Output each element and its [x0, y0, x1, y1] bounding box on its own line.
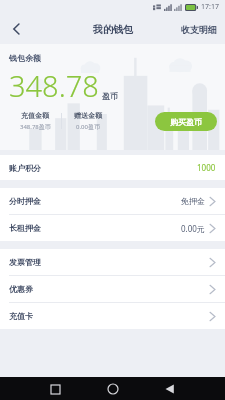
staticText: 348.78	[9, 66, 99, 105]
staticText: 账户积分	[9, 163, 41, 173]
staticText: 1000	[197, 162, 216, 173]
button[interactable]: 收支明细	[181, 24, 217, 35]
staticText: 优惠券	[9, 284, 33, 294]
staticText: 盈币	[102, 91, 118, 101]
button[interactable]: 长租押金	[0, 215, 225, 241]
staticText: 348.78盈币	[20, 123, 51, 131]
staticText: 赠送金额	[74, 111, 102, 120]
button[interactable]: Back	[159, 378, 181, 400]
staticText: 分时押金	[9, 196, 41, 206]
button[interactable]: 分时押金	[0, 188, 225, 215]
staticText: 我的钱包	[93, 23, 133, 36]
staticText: 发票管理	[9, 257, 41, 267]
staticText: 0.00元	[181, 223, 205, 234]
button[interactable]: 账户积分	[0, 155, 225, 180]
staticText: 长租押金	[9, 223, 41, 233]
staticText: 17:17	[201, 2, 219, 12]
button[interactable]: Recent apps	[44, 378, 66, 400]
button[interactable]: 充值卡	[0, 303, 225, 329]
staticText: 充值卡	[9, 311, 33, 321]
staticText: 充值金额	[21, 111, 49, 120]
button[interactable]: 优惠券	[0, 276, 225, 303]
button[interactable]: Home	[102, 378, 124, 400]
staticText: 免押金	[181, 196, 205, 206]
staticText: 0.00盈币	[76, 123, 100, 131]
button[interactable]: Back	[0, 14, 32, 44]
staticText: 钱包余额	[9, 53, 41, 63]
button[interactable]: 购买盈币	[155, 112, 217, 131]
staticText: 购买盈币	[170, 117, 202, 127]
staticText: 收支明细	[181, 24, 217, 35]
button[interactable]: 发票管理	[0, 249, 225, 276]
